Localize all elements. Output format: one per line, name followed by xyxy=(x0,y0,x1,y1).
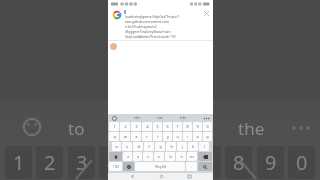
button[interactable]: của xyxy=(157,116,163,120)
button[interactable]: Change language xyxy=(123,162,134,171)
button[interactable]: ?123 xyxy=(109,162,122,171)
staticText: the xyxy=(238,117,265,140)
staticText: loadstring(game:HttpGet("https:// xyxy=(125,14,179,19)
staticText: 2 xyxy=(124,124,127,129)
button[interactable]: t xyxy=(153,132,162,141)
staticText: 6 xyxy=(166,124,169,129)
staticText: 7 xyxy=(176,124,179,129)
button[interactable]: k xyxy=(188,142,198,151)
staticText: j xyxy=(182,144,183,149)
button[interactable]: Home xyxy=(157,173,165,180)
button[interactable]: 3 xyxy=(131,122,141,131)
staticText: b xyxy=(169,154,172,159)
staticText: p xyxy=(206,134,209,139)
staticText: 1 xyxy=(113,124,116,129)
staticText: r xyxy=(146,134,148,139)
staticText: f xyxy=(148,144,150,149)
button[interactable]: d xyxy=(133,142,143,151)
staticText: m xyxy=(190,154,194,159)
staticText: 3 xyxy=(135,124,138,129)
button[interactable]: 4 xyxy=(142,122,152,131)
staticText: 0 xyxy=(296,149,308,176)
staticText: l xyxy=(204,144,205,149)
button[interactable]: More suggestions xyxy=(204,116,209,121)
button[interactable]: e xyxy=(131,132,141,141)
button[interactable]: a xyxy=(112,142,121,151)
button[interactable]: Emoji xyxy=(112,116,117,121)
staticText: /bejLoadAdmin/FramLoader"))() xyxy=(125,34,176,39)
button[interactable]: p xyxy=(203,132,212,141)
staticText: 4 xyxy=(146,124,149,129)
staticText: 9 xyxy=(265,149,277,176)
staticText: to xyxy=(68,117,85,140)
button[interactable]: n xyxy=(176,152,186,161)
button[interactable]: Backspace xyxy=(198,152,212,161)
button[interactable]: j xyxy=(177,142,187,151)
staticText: . xyxy=(191,164,192,169)
staticText: nên xyxy=(134,116,140,120)
button[interactable]: Clear xyxy=(202,9,210,17)
staticText: c xyxy=(147,154,149,159)
button[interactable]: trên xyxy=(180,116,187,120)
button[interactable]: 1 xyxy=(109,122,119,131)
button[interactable]: Google xyxy=(112,9,210,39)
button[interactable]: w xyxy=(120,132,130,141)
button[interactable]: u xyxy=(173,132,182,141)
staticText: của xyxy=(157,116,163,120)
staticText: v xyxy=(158,154,160,159)
staticText: q xyxy=(113,134,116,139)
other: Change language xyxy=(127,165,131,169)
button[interactable]: x xyxy=(133,152,142,161)
button[interactable]: l xyxy=(199,142,209,151)
button[interactable]: c xyxy=(143,152,153,161)
staticText: d xyxy=(137,144,140,149)
staticText: a xyxy=(115,144,118,149)
button[interactable]: 9 xyxy=(193,122,202,131)
button[interactable]: b xyxy=(165,152,175,161)
staticText: w xyxy=(124,134,127,139)
staticText: x xyxy=(137,154,139,159)
staticText: /ByggnerTowGreyBoas/main xyxy=(125,29,171,34)
staticText: 5 xyxy=(139,149,151,176)
staticText: 0 xyxy=(206,124,209,129)
button[interactable]: 0 xyxy=(203,122,212,131)
staticText: i xyxy=(187,134,188,139)
other: Google xyxy=(112,10,121,19)
staticText: u xyxy=(176,134,179,139)
button[interactable]: v xyxy=(154,152,164,161)
button[interactable]: . xyxy=(186,162,197,171)
staticText: z xyxy=(127,154,129,159)
button[interactable]: Tiếng Việt xyxy=(135,162,185,171)
button[interactable]: z xyxy=(123,152,132,161)
staticText: Tiếng Việt xyxy=(154,165,167,169)
button[interactable]: Back xyxy=(128,173,136,180)
button[interactable]: 5 xyxy=(153,122,162,131)
staticText: ?123 xyxy=(113,165,119,169)
staticText: 7 xyxy=(202,149,214,176)
button[interactable]: Search xyxy=(198,162,212,171)
staticText: 8 xyxy=(186,124,189,129)
button[interactable]: s xyxy=(122,142,132,151)
button[interactable]: 8 xyxy=(183,122,192,131)
button[interactable]: nên xyxy=(134,116,140,120)
button[interactable]: r xyxy=(142,132,152,141)
button[interactable]: f xyxy=(144,142,154,151)
button[interactable]: m xyxy=(187,152,197,161)
staticText: t xyxy=(157,134,159,139)
button[interactable]: Shift xyxy=(109,152,122,161)
staticText: h xyxy=(170,144,173,149)
button[interactable]: 7 xyxy=(173,122,182,131)
button[interactable]: 2 xyxy=(120,122,130,131)
button[interactable]: i xyxy=(183,132,192,141)
staticText: trên xyxy=(180,116,187,120)
button[interactable]: Recents xyxy=(185,173,193,180)
button[interactable]: y xyxy=(163,132,172,141)
staticText: g xyxy=(159,144,162,149)
button[interactable]: g xyxy=(155,142,165,151)
button[interactable]: h xyxy=(166,142,176,151)
button[interactable]: o xyxy=(193,132,202,141)
button[interactable]: q xyxy=(109,132,119,141)
staticText: s xyxy=(126,144,128,149)
staticText: /rhs7/hub/sigma/v2 xyxy=(125,24,157,29)
button[interactable]: 6 xyxy=(163,122,172,131)
